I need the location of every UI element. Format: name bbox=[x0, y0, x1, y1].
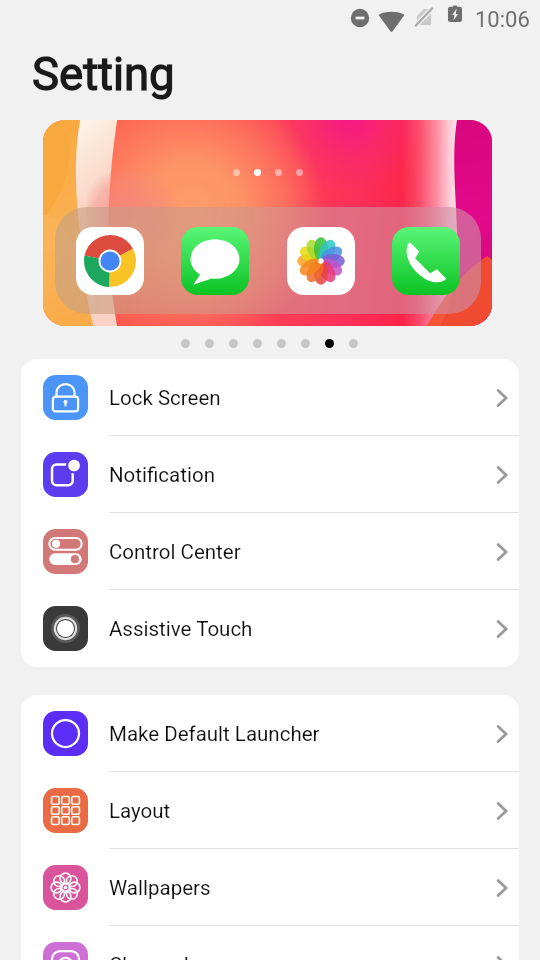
button[interactable]: Lock Screen bbox=[21, 359, 519, 436]
staticText: Notification bbox=[109, 463, 215, 487]
button[interactable]: Wallpapers bbox=[21, 849, 519, 926]
staticText: Setting bbox=[32, 48, 175, 101]
staticText: Lock Screen bbox=[109, 386, 221, 410]
staticText: Make Default Launcher bbox=[109, 722, 320, 746]
staticText: Control Center bbox=[109, 540, 241, 564]
staticText: 10:06 bbox=[475, 7, 530, 33]
button[interactable]: Control Center bbox=[21, 513, 519, 590]
staticText: Change Icon bbox=[109, 953, 223, 960]
button[interactable]: Make Default Launcher bbox=[21, 695, 519, 772]
button[interactable]: Notification bbox=[21, 436, 519, 513]
button[interactable]: Layout bbox=[21, 772, 519, 849]
staticText: Layout bbox=[109, 799, 171, 823]
button[interactable]: Assistive Touch bbox=[21, 590, 519, 667]
staticText: Wallpapers bbox=[109, 876, 211, 900]
button[interactable]: Change Icon bbox=[21, 926, 519, 960]
staticText: Assistive Touch bbox=[109, 617, 253, 641]
